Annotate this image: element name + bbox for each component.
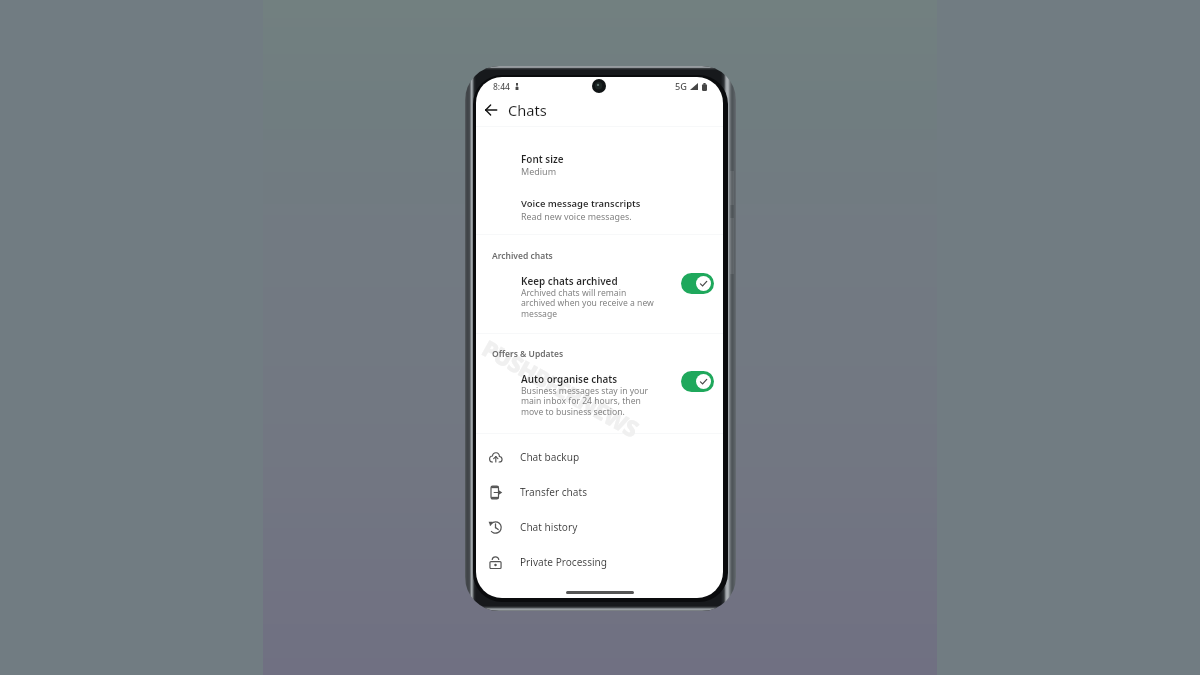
staticText: Voice message transcripts: [521, 197, 641, 210]
button[interactable]: Chat history: [476, 510, 723, 544]
button[interactable]: Back: [477, 96, 504, 123]
button[interactable]: Toggle: [681, 371, 714, 392]
staticText: Private Processing: [520, 555, 608, 569]
staticText: PUSHBFERNEWS: [477, 332, 644, 443]
staticText: Offers & Updates: [492, 348, 564, 360]
staticText: Business messages stay in your main inbo…: [521, 385, 649, 418]
button[interactable]: Transfer chats: [476, 475, 723, 509]
staticText: Read new voice messages.: [521, 210, 632, 222]
staticText: Auto organise chats: [521, 372, 618, 385]
staticText: Archived chats will remain archived when…: [521, 287, 654, 320]
staticText: Chats: [508, 100, 547, 120]
button[interactable]: Private Processing: [476, 545, 723, 579]
staticText: Transfer chats: [520, 485, 587, 499]
staticText: Chat history: [520, 520, 578, 534]
staticText: Font size: [521, 152, 564, 165]
staticText: Archived chats: [492, 250, 553, 262]
button[interactable]: Toggle: [681, 273, 714, 294]
button[interactable]: Chat backup: [476, 440, 723, 474]
staticText: Chat backup: [520, 450, 580, 464]
staticText: 5G: [675, 80, 687, 93]
staticText: Medium: [521, 165, 557, 177]
staticText: Keep chats archived: [521, 274, 618, 287]
staticText: 8:44: [493, 81, 510, 93]
